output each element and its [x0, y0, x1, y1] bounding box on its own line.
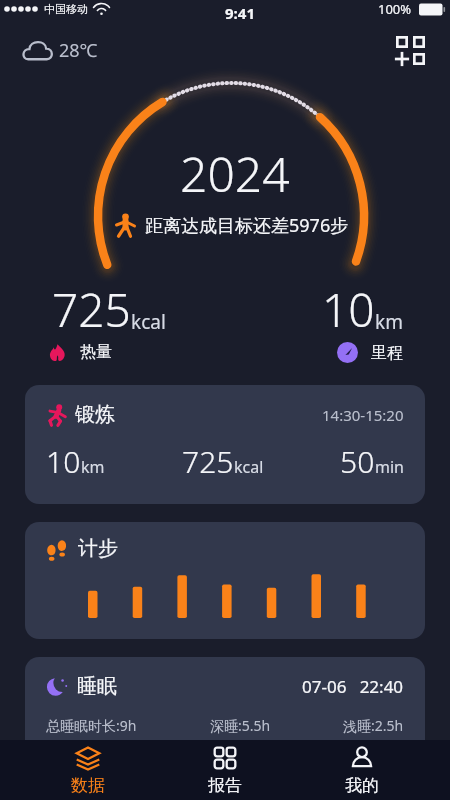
staticText: kcal	[131, 309, 166, 335]
staticText: km	[81, 456, 105, 478]
staticText: km	[375, 309, 403, 335]
staticText: 浅睡:2.5h	[343, 716, 404, 735]
staticText: 距离达成目标还差5976步	[145, 213, 349, 238]
staticText: 100%	[378, 0, 412, 18]
staticText: 14:30-15:20	[322, 405, 404, 425]
button[interactable]: 报告	[156, 740, 293, 800]
staticText: 总睡眠时长:9h	[46, 716, 137, 735]
button[interactable]: 10	[322, 278, 403, 363]
staticText: 中国移动	[44, 2, 88, 16]
button[interactable]: 睡眠	[25, 657, 425, 800]
staticText: min	[375, 456, 404, 478]
staticText: 里程	[371, 343, 403, 363]
staticText: 报告	[208, 775, 242, 796]
button[interactable]: 725	[52, 278, 166, 362]
staticText: 10	[322, 278, 375, 341]
button[interactable]: 锻炼	[25, 385, 425, 504]
button[interactable]: 28℃	[22, 34, 98, 67]
staticText: 深睡:5.5h	[210, 716, 271, 735]
button[interactable]: 数据	[20, 740, 156, 800]
staticText: 我的	[345, 775, 379, 796]
staticText: 50	[340, 441, 375, 482]
staticText: 725	[52, 278, 131, 341]
staticText: 10	[46, 441, 81, 482]
staticText: 锻炼	[75, 402, 115, 427]
staticText: 28℃	[59, 38, 98, 63]
staticText: 9:41	[225, 3, 255, 23]
staticText: 热量	[80, 342, 112, 362]
staticText: 2024	[180, 141, 290, 206]
staticText: 睡眠	[77, 674, 117, 699]
staticText: 数据	[71, 775, 105, 796]
staticText: 07-06 22:40	[302, 675, 404, 698]
staticText: 725	[182, 441, 234, 482]
staticText: kcal	[234, 456, 264, 478]
button[interactable]: 计步	[25, 522, 425, 639]
button[interactable]: Add widget	[390, 30, 430, 70]
staticText: 计步	[78, 536, 118, 561]
button[interactable]: 我的	[293, 740, 430, 800]
